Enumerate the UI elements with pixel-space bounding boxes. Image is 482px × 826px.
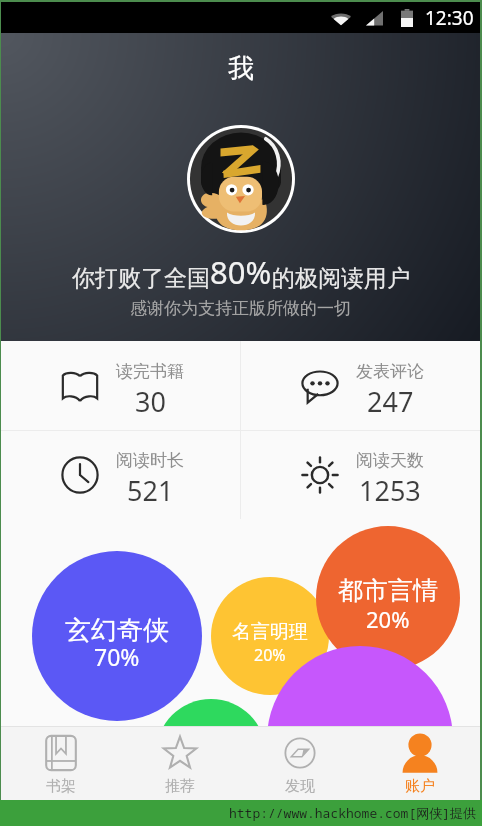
staticText: 推荐: [165, 777, 195, 796]
staticText: 的极阅读用户: [272, 264, 410, 293]
staticText: 247: [367, 383, 414, 420]
staticText: 名言明理: [232, 620, 308, 644]
button[interactable]: 发表评论: [241, 341, 480, 430]
button[interactable]: 都市言情: [267, 646, 453, 826]
staticText: 80%: [210, 251, 272, 293]
button[interactable]: 阅读天数: [241, 431, 480, 519]
staticText: 20%: [254, 644, 286, 666]
staticText: 发现: [285, 777, 315, 796]
staticText: 阅读时长: [116, 450, 184, 471]
button[interactable]: 账户: [360, 727, 480, 800]
staticText: 都市言情: [310, 766, 410, 797]
staticText: 书架: [46, 777, 76, 796]
staticText: 521: [127, 472, 174, 509]
staticText: 阅读天数: [356, 450, 424, 471]
button[interactable]: 读完书籍: [1, 341, 240, 430]
staticText: 30: [135, 383, 166, 420]
staticText: 读完书籍: [116, 361, 184, 382]
button[interactable]: 阅读时长: [1, 431, 240, 519]
button[interactable]: 名言明理: [211, 577, 329, 695]
staticText: http://www.hackhome.com[网侠]提供: [229, 804, 477, 822]
staticText: 你打败了全国: [72, 264, 210, 293]
staticText: 我: [228, 52, 254, 85]
staticText: 20%: [366, 604, 410, 634]
staticText: 12:30: [425, 5, 474, 31]
button[interactable]: 玄幻奇侠: [32, 551, 202, 721]
button[interactable]: 都市言情: [316, 526, 460, 670]
staticText: 发表评论: [356, 361, 424, 382]
staticText: 都市言情: [338, 575, 438, 606]
staticText: 1253: [359, 472, 421, 509]
staticText: 玄幻奇侠: [65, 614, 169, 647]
staticText: 账户: [405, 777, 435, 796]
button[interactable]: 书架: [1, 727, 120, 800]
staticText: 70%: [94, 641, 140, 672]
button[interactable]: [156, 699, 266, 809]
button[interactable]: 发现: [240, 727, 360, 800]
button[interactable]: 推荐: [120, 727, 240, 800]
staticText: 感谢你为支持正版所做的一切: [130, 298, 351, 319]
